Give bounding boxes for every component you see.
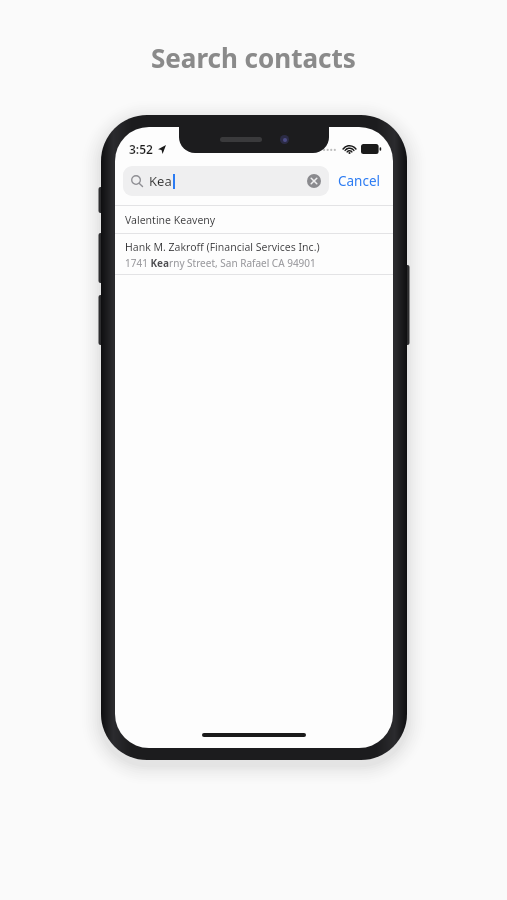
- staticText: 3:52: [129, 141, 153, 157]
- staticText: Hank M. Zakroff (Financial Services Inc.…: [125, 240, 320, 254]
- staticText: Cancel: [338, 172, 381, 190]
- button[interactable]: Clear search: [307, 174, 321, 188]
- button[interactable]: Kea: [123, 166, 329, 196]
- staticText: Kea: [149, 172, 172, 190]
- staticText: Search contacts: [151, 40, 356, 75]
- staticText: Valentine Keaveny: [125, 213, 216, 227]
- button[interactable]: Hank M. Zakroff (Financial Services Inc.…: [115, 234, 393, 274]
- button[interactable]: Valentine Keaveny: [115, 206, 393, 233]
- staticText: 1741 Kearny Street, San Rafael CA 94901: [125, 256, 316, 270]
- button[interactable]: Cancel: [329, 168, 383, 194]
